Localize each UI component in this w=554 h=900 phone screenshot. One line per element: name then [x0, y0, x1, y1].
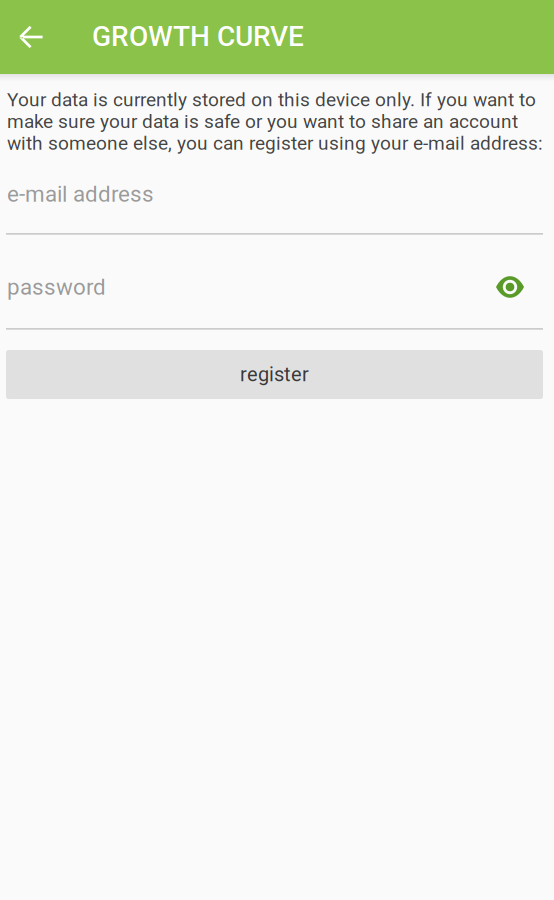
staticText: register — [240, 363, 309, 386]
button[interactable]: e-mail address — [6, 179, 532, 209]
staticText: make sure your data is safe or you want … — [7, 110, 518, 133]
staticText: GROWTH CURVE — [92, 20, 304, 53]
button[interactable]: register — [6, 350, 543, 399]
staticText: password — [7, 274, 106, 300]
staticText: with someone else, you can register usin… — [7, 132, 543, 154]
staticText: e-mail address — [7, 181, 154, 207]
button[interactable]: password — [6, 272, 488, 302]
staticText: Your data is currently stored on this de… — [7, 89, 536, 111]
button[interactable]: Show password — [488, 272, 532, 302]
button[interactable]: Back — [0, 0, 64, 74]
